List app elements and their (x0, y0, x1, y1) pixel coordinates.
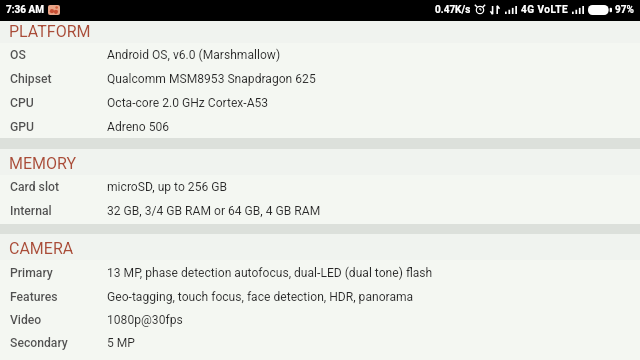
button[interactable]: Secondary (0, 332, 640, 355)
other: SIM 1 signal (505, 6, 517, 14)
button[interactable]: MEMORY (0, 149, 640, 175)
staticText: 13 MP, phase detection autofocus, dual-L… (107, 266, 433, 280)
other: Notification (48, 5, 60, 15)
staticText: MEMORY (9, 154, 77, 173)
button[interactable]: Internal (0, 199, 640, 224)
staticText: Secondary (10, 336, 68, 350)
staticText: Geo-tagging, touch focus, face detection… (107, 290, 414, 304)
staticText: OS (10, 48, 26, 62)
staticText: Internal (10, 204, 52, 218)
button[interactable]: Chipset (0, 67, 640, 90)
staticText: 7:36 AM (6, 4, 44, 16)
staticText: Card slot (10, 180, 59, 194)
button[interactable]: Features (0, 285, 640, 308)
staticText: 97% (615, 4, 634, 16)
staticText: Features (10, 290, 58, 304)
staticText: 1080p@30fps (107, 313, 183, 327)
staticText: Video (10, 313, 42, 327)
button[interactable]: CAMERA (0, 234, 640, 260)
staticText: CPU (10, 96, 34, 110)
staticText: 5 MP (107, 336, 135, 350)
staticText: Adreno 506 (107, 120, 170, 134)
staticText: CAMERA (9, 239, 74, 258)
other: SIM 2 signal (572, 6, 584, 14)
other: Data transfer (490, 5, 500, 15)
staticText: Chipset (10, 72, 52, 86)
staticText: Android OS, v6.0 (Marshmallow) (107, 48, 281, 62)
button[interactable]: GPU (0, 114, 640, 138)
staticText: GPU (10, 120, 35, 134)
staticText: 0.47K/s (435, 4, 471, 16)
button[interactable]: Primary (0, 260, 640, 285)
staticText: PLATFORM (9, 22, 91, 41)
staticText: Octa-core 2.0 GHz Cortex-A53 (107, 96, 269, 110)
button[interactable]: PLATFORM (0, 21, 640, 43)
staticText: Primary (10, 266, 53, 280)
button[interactable]: Card slot (0, 175, 640, 199)
other: Battery 97 percent (588, 5, 612, 15)
staticText: Qualcomm MSM8953 Snapdragon 625 (107, 72, 316, 86)
staticText: microSD, up to 256 GB (107, 180, 228, 194)
staticText: 4G VoLTE (521, 4, 569, 16)
staticText: 32 GB, 3/4 GB RAM or 64 GB, 4 GB RAM (107, 204, 321, 218)
button[interactable]: CPU (0, 90, 640, 114)
other: Alarm set (475, 5, 485, 15)
button[interactable]: Video (0, 308, 640, 332)
button[interactable]: OS (0, 43, 640, 67)
